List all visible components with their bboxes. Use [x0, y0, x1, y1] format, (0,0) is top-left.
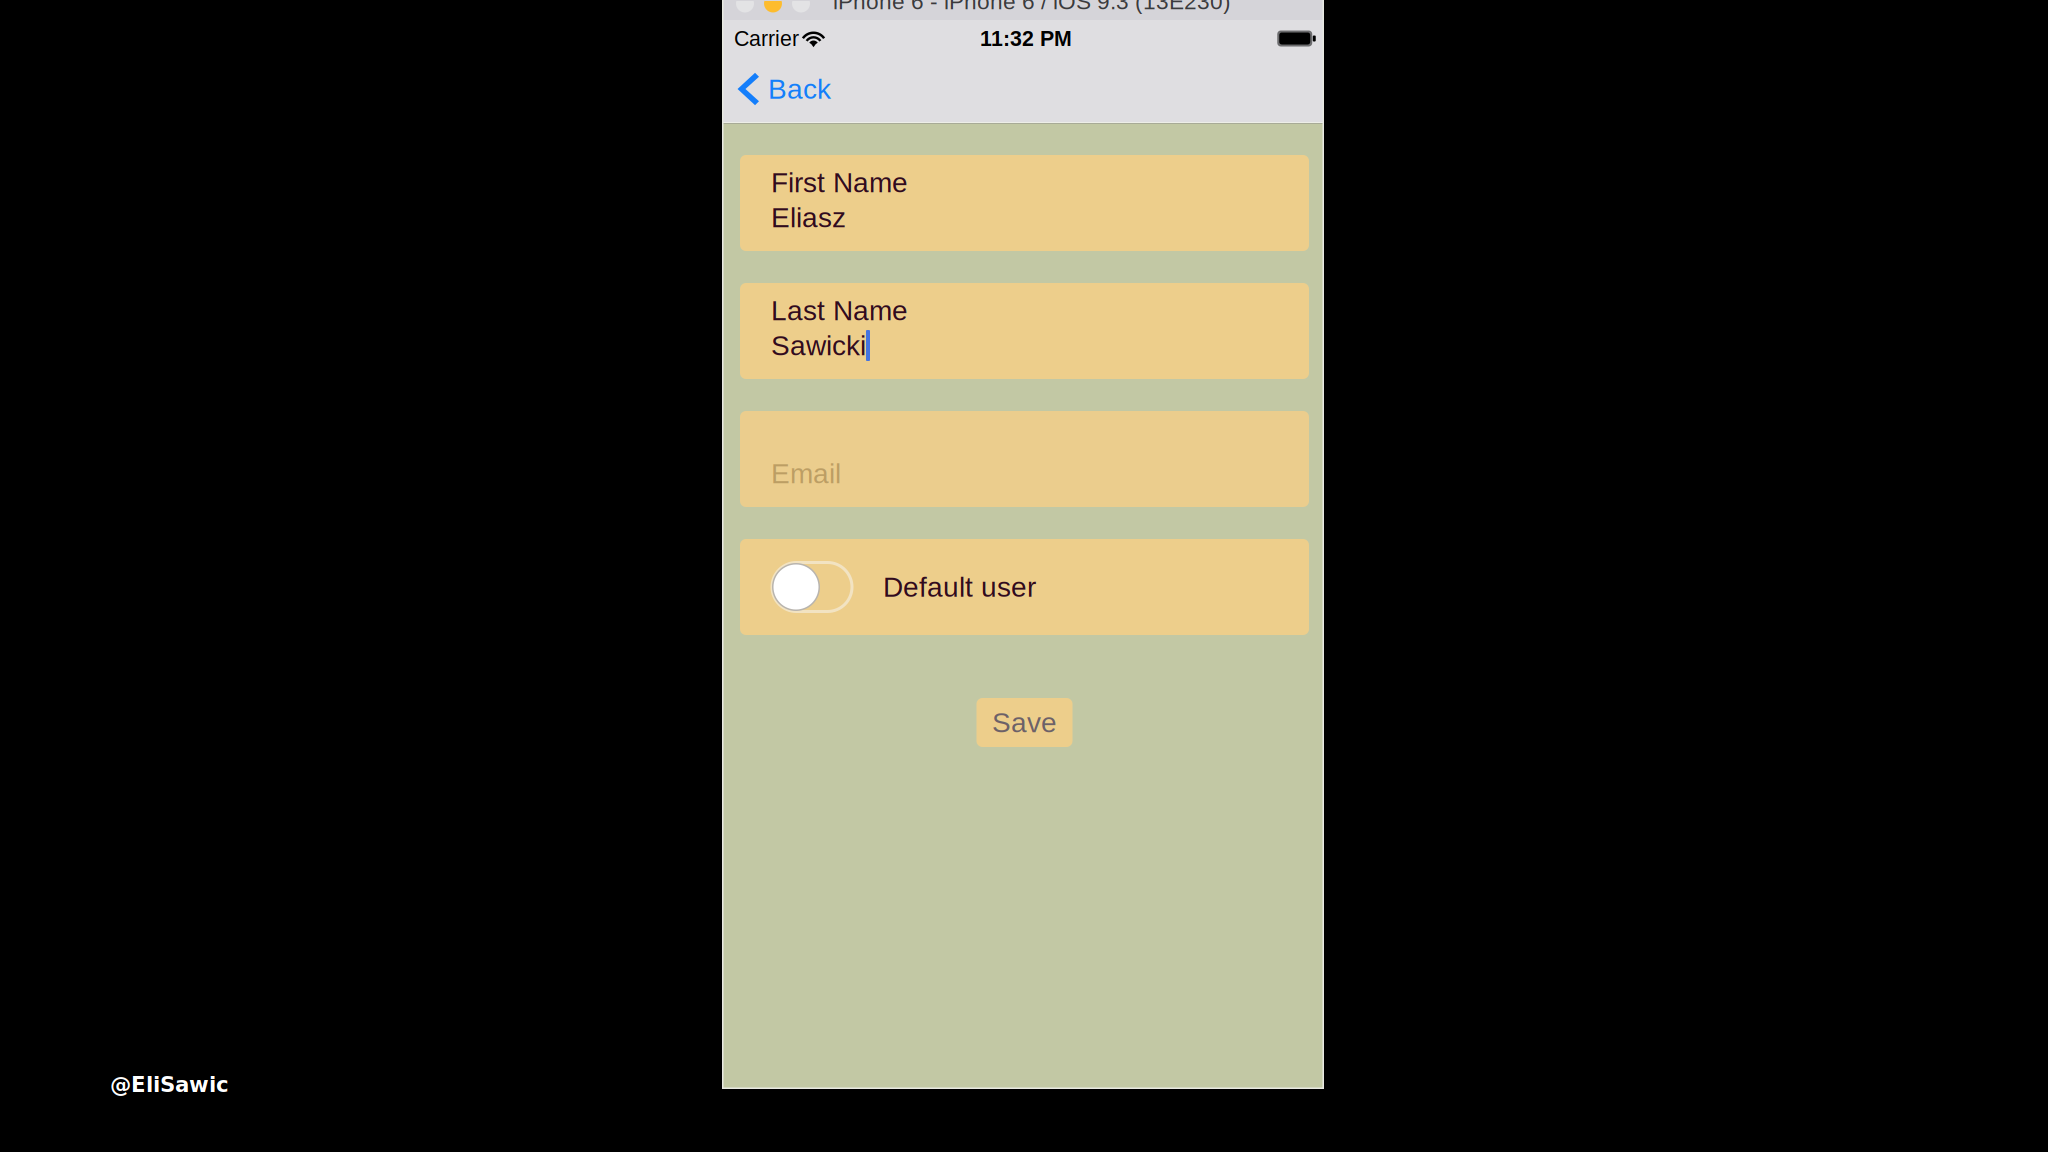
staticText: Back — [768, 73, 831, 105]
staticText: iPhone 6 - iPhone 6 / iOS 9.3 (13E230) — [833, 0, 1231, 14]
staticText: Sawicki — [771, 330, 866, 361]
staticText: Carrier — [734, 27, 799, 50]
button[interactable]: Last Name — [740, 283, 1309, 379]
staticText: Last Name — [771, 295, 908, 326]
button[interactable]: Save — [976, 698, 1072, 747]
staticText: 11:32 PM — [980, 27, 1072, 50]
button[interactable]: Default user — [772, 562, 852, 611]
staticText: Default user — [883, 571, 1036, 603]
staticText: Eliasz — [771, 202, 846, 233]
button[interactable]: Back — [722, 67, 845, 111]
button[interactable]: First Name — [740, 155, 1309, 251]
staticText: Save — [992, 707, 1057, 738]
button[interactable]: Email — [740, 411, 1309, 507]
staticText: Email — [771, 458, 841, 489]
staticText: First Name — [771, 167, 908, 198]
staticText: @EliSawic — [110, 1072, 229, 1097]
